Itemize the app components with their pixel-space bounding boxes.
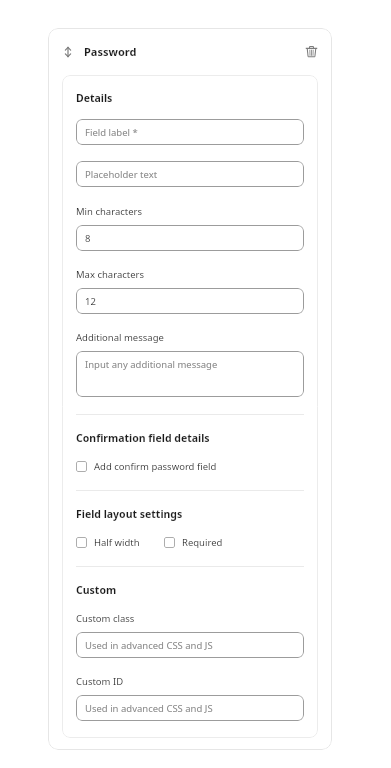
staticText: Add confirm password field (94, 460, 217, 473)
button[interactable]: Used in advanced CSS and JS (76, 632, 304, 658)
button[interactable]: Required (164, 536, 223, 549)
button[interactable]: Input any additional message (76, 351, 304, 397)
staticText: Custom class (76, 612, 135, 625)
staticText: Used in advanced CSS and JS (85, 702, 213, 715)
staticText: Used in advanced CSS and JS (85, 639, 213, 652)
staticText: Input any additional message (85, 358, 218, 371)
staticText: Field label * (85, 126, 138, 139)
staticText: 8 (85, 232, 91, 245)
staticText: Additional message (76, 331, 164, 344)
staticText: Max characters (76, 268, 145, 281)
staticText: Details (76, 91, 113, 105)
button[interactable]: Delete field (305, 45, 318, 58)
staticText: Required (182, 536, 223, 549)
staticText: Field layout settings (76, 507, 183, 521)
button[interactable]: Field label * (76, 119, 304, 145)
button[interactable]: 12 (76, 288, 304, 314)
button[interactable]: Half width (76, 536, 140, 549)
button[interactable]: Add confirm password field (76, 460, 217, 473)
staticText: Min characters (76, 205, 143, 218)
staticText: Custom (76, 583, 117, 597)
staticText: Half width (94, 536, 140, 549)
button[interactable]: Reorder field (62, 46, 74, 58)
staticText: Placeholder text (85, 168, 158, 181)
button[interactable]: Used in advanced CSS and JS (76, 695, 304, 721)
staticText: 12 (85, 295, 96, 308)
staticText: Confirmation field details (76, 431, 210, 445)
staticText: Password (84, 44, 137, 59)
staticText: Custom ID (76, 675, 124, 688)
button[interactable]: 8 (76, 225, 304, 251)
button[interactable]: Placeholder text (76, 161, 304, 187)
